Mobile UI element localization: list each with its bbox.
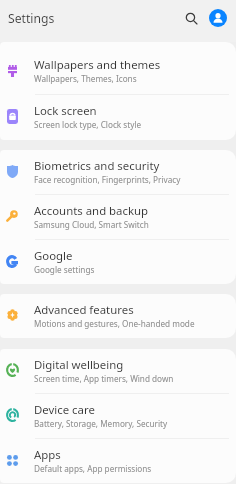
button[interactable]: Advanced features [0, 294, 236, 338]
staticText: Face recognition, Fingerprints, Privacy [34, 174, 181, 185]
staticText: Lock screen [34, 103, 97, 119]
button[interactable]: Apps [0, 439, 236, 483]
staticText: Battery, Storage, Memory, Security [34, 418, 168, 429]
button[interactable]: Wallpapers and themes [0, 42, 236, 95]
button[interactable]: Device care [0, 394, 236, 439]
button[interactable]: Biometrics and security [0, 150, 236, 195]
staticText: Accounts and backup [34, 203, 149, 219]
button[interactable]: Search [179, 6, 203, 30]
button[interactable]: Lock screen [0, 95, 236, 140]
staticText: Settings [8, 10, 55, 27]
staticText: Motions and gestures, One-handed mode [34, 318, 195, 329]
button[interactable]: Digital wellbeing [0, 349, 236, 394]
staticText: Device care [34, 402, 95, 418]
staticText: Screen time, App timers, Wind down [34, 373, 174, 384]
staticText: Default apps, App permissions [34, 463, 152, 474]
button[interactable]: Account [206, 6, 230, 30]
staticText: Screen lock type, Clock style [34, 119, 142, 130]
staticText: Wallpapers, Themes, Icons [34, 73, 137, 84]
staticText: Samsung Cloud, Smart Switch [34, 219, 149, 230]
staticText: Google settings [34, 264, 95, 275]
button[interactable]: Accounts and backup [0, 195, 236, 240]
staticText: Digital wellbeing [34, 357, 124, 373]
staticText: Biometrics and security [34, 158, 160, 174]
staticText: Advanced features [34, 302, 134, 318]
staticText: Wallpapers and themes [34, 57, 161, 73]
button[interactable]: Google [0, 240, 236, 284]
staticText: Apps [34, 447, 61, 463]
staticText: Google [34, 248, 73, 264]
